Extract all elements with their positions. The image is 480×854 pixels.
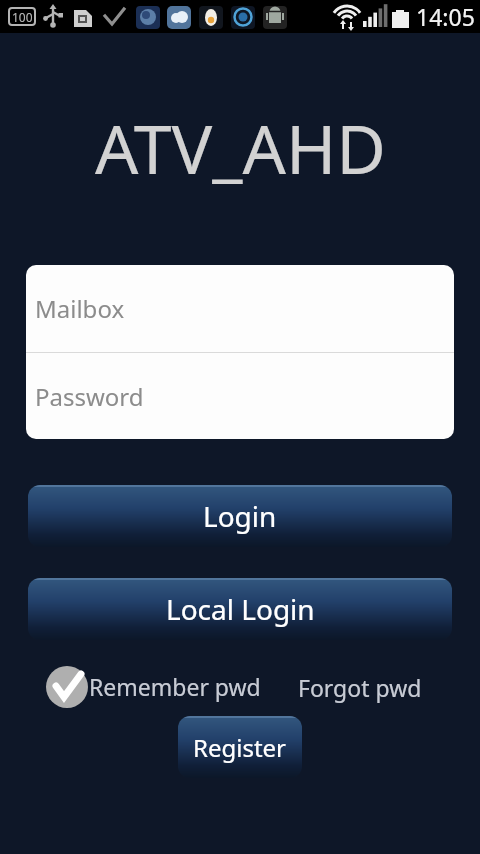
staticText: Mailbox (35, 292, 125, 325)
button[interactable]: Local Login (28, 578, 452, 640)
staticText: ATV_AHD (95, 101, 386, 194)
button[interactable]: Login (28, 485, 452, 547)
button[interactable]: Remember pwd (45, 664, 261, 708)
button[interactable]: Forgot pwd (292, 664, 428, 710)
staticText: Password (35, 380, 144, 413)
staticText: Login (203, 497, 277, 535)
button[interactable]: Register (178, 716, 302, 778)
button[interactable]: Mailbox (26, 265, 454, 352)
staticText: 100 (12, 9, 33, 25)
staticText: Remember pwd (89, 671, 261, 702)
staticText: Local Login (166, 590, 315, 628)
staticText: Forgot pwd (298, 672, 422, 703)
staticText: 14:05 (416, 1, 475, 32)
button[interactable]: Password (26, 353, 454, 439)
staticText: Register (193, 731, 287, 764)
